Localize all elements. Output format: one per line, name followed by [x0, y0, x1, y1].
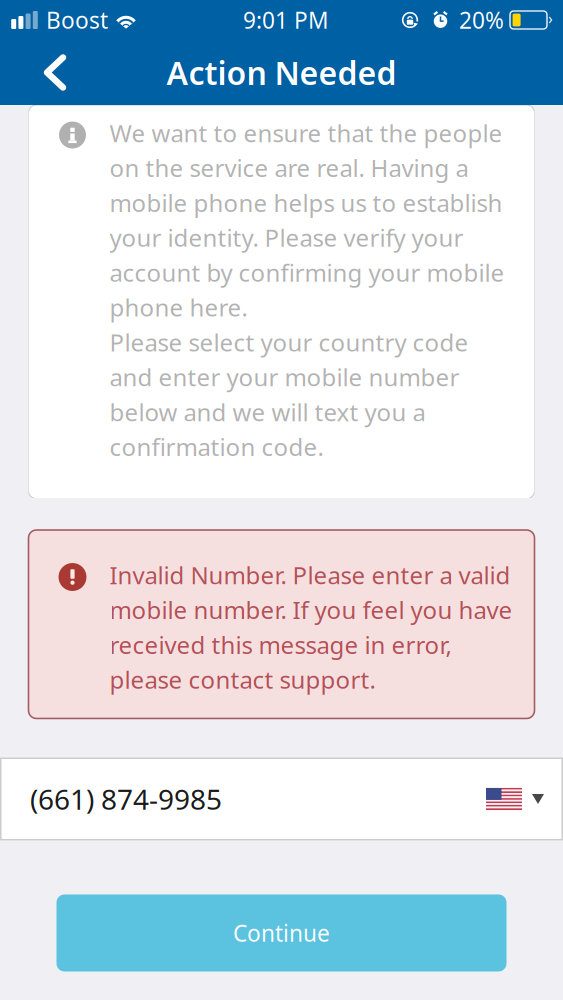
staticText: Invalid Number. Please enter a valid mob… — [109, 559, 512, 695]
staticText: Boost — [46, 5, 108, 35]
button[interactable]: Back — [0, 40, 97, 104]
staticText: 20% — [459, 5, 504, 35]
staticText: We want to ensure that the people on the… — [109, 117, 504, 463]
staticText: Action Needed — [166, 51, 396, 94]
staticText: (661) 874-9985 — [30, 780, 222, 818]
button[interactable]: Continue — [56, 894, 506, 971]
button[interactable]: Select country code — [486, 788, 544, 810]
staticText: 9:01 PM — [243, 5, 329, 35]
staticText: Continue — [233, 918, 330, 948]
